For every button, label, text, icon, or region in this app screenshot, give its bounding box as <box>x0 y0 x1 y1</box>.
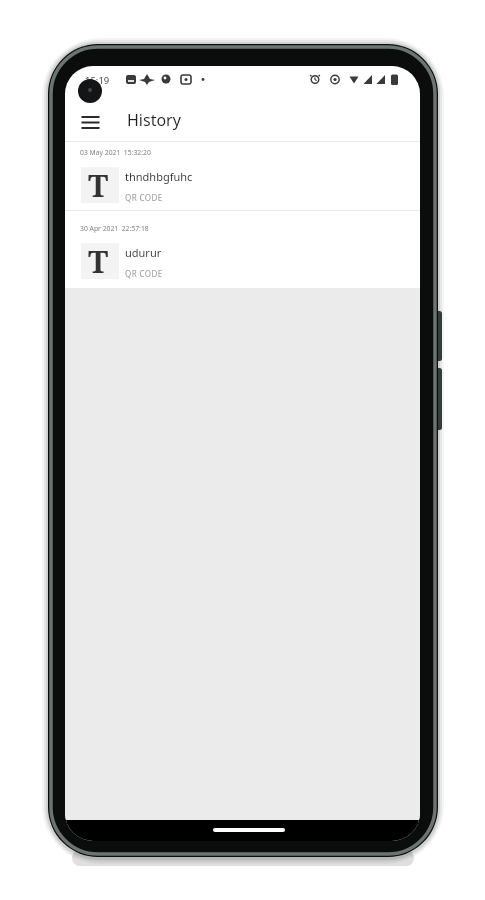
staticText: udurur <box>125 245 162 260</box>
staticText: QR CODE <box>125 192 163 203</box>
staticText: 30 Apr 2021 22:57:18 <box>80 224 149 233</box>
staticText: thndhbgfuhc <box>125 169 193 184</box>
button[interactable]: 03 May 2021 15:32:20 <box>65 142 420 210</box>
staticText: History <box>127 109 181 131</box>
staticText: QR CODE <box>125 268 163 279</box>
staticText: 03 May 2021 15:32:20 <box>80 148 151 157</box>
staticText: T <box>88 164 109 200</box>
staticText: 15:19 <box>85 74 110 87</box>
button[interactable] <box>73 105 109 141</box>
button[interactable]: 30 Apr 2021 22:57:18 <box>65 218 420 286</box>
staticText: T <box>88 240 109 276</box>
